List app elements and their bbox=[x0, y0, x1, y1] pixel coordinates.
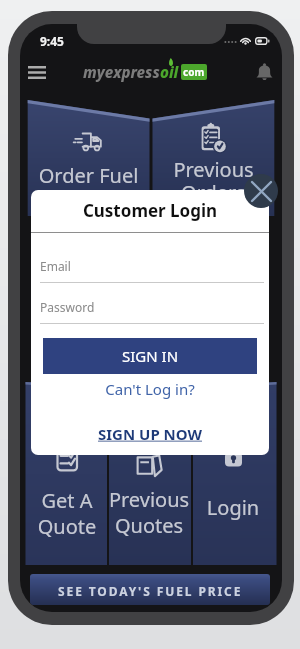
button[interactable]: SEE TODAY'S FUEL PRICE bbox=[30, 574, 270, 605]
button[interactable]: SIGN UP NOW bbox=[31, 424, 269, 444]
button[interactable]: Order Fuel bbox=[28, 100, 149, 216]
staticText: myexpress bbox=[83, 62, 160, 82]
button[interactable]: SIGN IN bbox=[43, 338, 257, 374]
button[interactable]: Previous Quotes bbox=[108, 382, 190, 565]
button[interactable]: Notifications bbox=[251, 59, 277, 85]
staticText: Get A Quote bbox=[26, 487, 108, 539]
button[interactable]: Previous Orders bbox=[153, 100, 274, 216]
staticText: Login bbox=[192, 494, 274, 521]
staticText: 9:45 bbox=[40, 33, 64, 49]
staticText: Email bbox=[40, 258, 71, 274]
staticText: SIGN IN bbox=[122, 346, 179, 366]
staticText: Previous Quotes bbox=[108, 486, 190, 538]
button[interactable]: Can't Log in? bbox=[31, 379, 269, 399]
staticText: Previous Orders bbox=[153, 156, 274, 206]
staticText: SEE TODAY'S FUEL PRICE bbox=[58, 583, 243, 599]
staticText: Customer Login bbox=[31, 199, 269, 222]
button[interactable]: Login bbox=[192, 382, 274, 565]
staticText: com bbox=[183, 65, 205, 79]
staticText: oil bbox=[160, 62, 179, 82]
staticText: Password bbox=[40, 299, 95, 315]
button[interactable]: Menu bbox=[23, 56, 51, 88]
button[interactable]: Close bbox=[244, 174, 278, 208]
staticText: Order Fuel bbox=[28, 162, 149, 189]
button[interactable]: Get A Quote bbox=[26, 382, 108, 565]
